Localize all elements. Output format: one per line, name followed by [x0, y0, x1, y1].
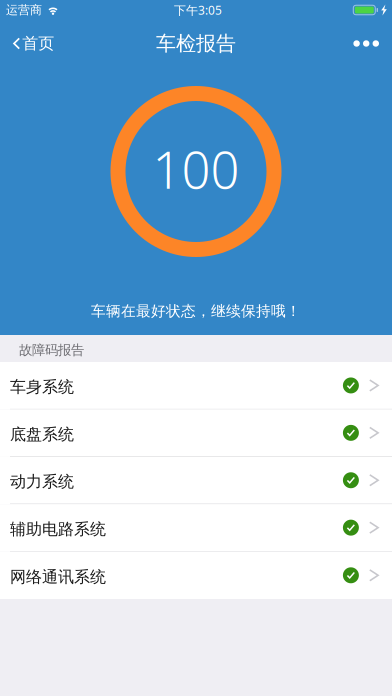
button[interactable]: 底盘系统 [0, 409, 392, 457]
staticText: 运营商 [6, 3, 42, 17]
button[interactable]: 网络通讯系统 [0, 552, 392, 599]
staticText: 车辆在最好状态，继续保持哦！ [91, 302, 301, 320]
button[interactable]: 动力系统 [0, 457, 392, 504]
staticText: 网络通讯系统 [10, 567, 106, 587]
staticText: 首页 [22, 34, 54, 53]
staticText: 100 [152, 135, 239, 203]
staticText: 车检报告 [156, 31, 236, 56]
staticText: 故障码报告 [19, 342, 84, 358]
staticText: 下午3:05 [174, 2, 222, 18]
staticText: 辅助电路系统 [10, 519, 106, 539]
staticText: 动力系统 [10, 472, 74, 492]
button[interactable]: 车身系统 [0, 362, 392, 409]
button[interactable]: 首页 [0, 20, 64, 64]
staticText: 底盘系统 [10, 424, 74, 444]
staticText: 车身系统 [10, 377, 74, 397]
button[interactable]: 辅助电路系统 [0, 504, 392, 552]
button[interactable]: More options [339, 20, 392, 64]
